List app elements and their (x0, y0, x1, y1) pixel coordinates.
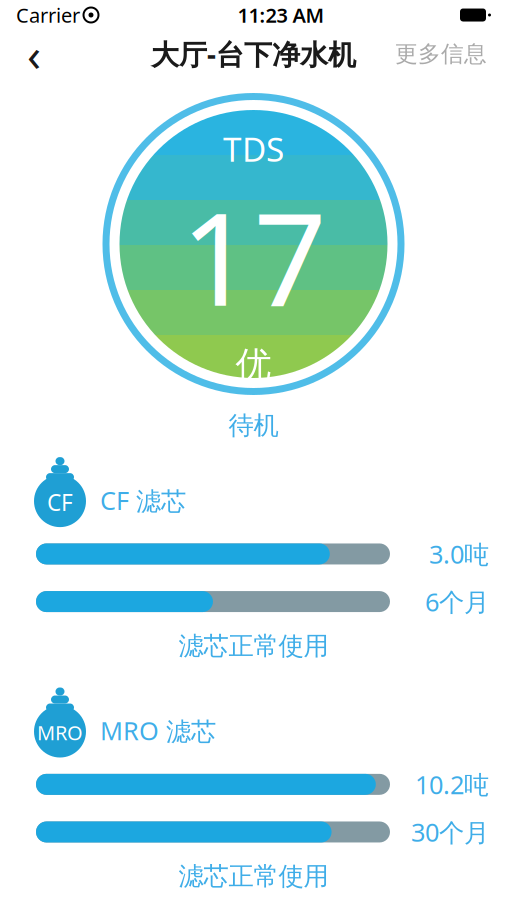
button[interactable]: Back (12, 32, 56, 76)
staticText: Carrier (16, 2, 80, 28)
staticText: 滤芯正常使用 (178, 861, 328, 892)
staticText: ‹ (27, 24, 41, 84)
staticText: 11:23 AM (237, 2, 324, 28)
staticText: 6个月 (425, 585, 489, 618)
staticText: 3.0吨 (429, 537, 489, 571)
staticText: 30个月 (411, 815, 489, 849)
staticText: MRO 滤芯 (100, 714, 216, 747)
button[interactable]: 更多信息 (387, 32, 495, 76)
staticText: CF 滤芯 (100, 483, 186, 517)
staticText: 10.2吨 (415, 767, 489, 801)
staticText: 更多信息 (395, 40, 487, 68)
staticText: TDS (223, 127, 284, 171)
staticText: 滤芯正常使用 (178, 630, 328, 661)
staticText: 优 (235, 343, 271, 387)
staticText: 17 (180, 171, 326, 341)
staticText: 待机 (228, 410, 278, 441)
staticText: MRO (37, 719, 83, 746)
staticText: CF (47, 487, 73, 517)
staticText: 大厅-台下净水机 (151, 35, 356, 73)
